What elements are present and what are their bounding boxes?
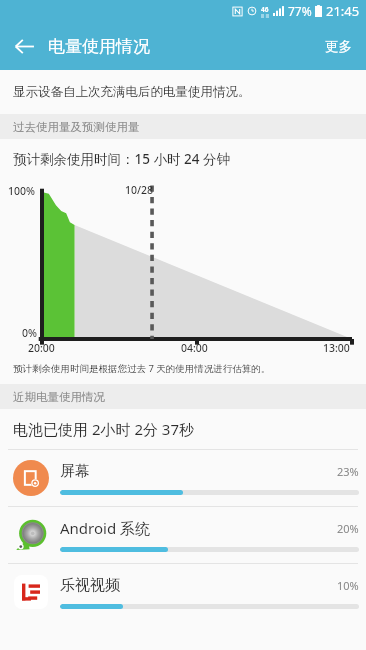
staticText: 乐视视频 (60, 576, 337, 595)
button[interactable]: 更多 (311, 26, 366, 67)
staticText: 屏幕 (60, 462, 337, 481)
staticText: 20:00 (28, 341, 55, 355)
button[interactable]: Back (0, 22, 48, 70)
staticText: 21:45 (326, 2, 360, 20)
staticText: 23% (337, 464, 359, 479)
staticText: 20% (337, 521, 359, 536)
button[interactable]: 屏幕 (0, 450, 366, 506)
staticText: 显示设备自上次充满电后的电量使用情况。 (13, 84, 251, 100)
staticText: 电量使用情况 (48, 36, 150, 57)
staticText: 0% (22, 326, 37, 340)
button[interactable]: 乐视视频 (0, 564, 366, 620)
staticText: 预计剩余使用时间是根据您过去 7 天的使用情况进行估算的。 (13, 362, 271, 375)
staticText: 77% (288, 3, 312, 19)
staticText: 46 (261, 5, 269, 14)
staticText: Android 系统 (60, 518, 337, 538)
staticText: 100% (8, 184, 35, 198)
staticText: 04:00 (181, 341, 208, 355)
staticText: 更多 (325, 38, 352, 55)
staticText: 预计剩余使用时间：15 小时 24 分钟 (13, 150, 230, 168)
staticText: 电池已使用 2小时 2分 37秒 (13, 419, 195, 439)
staticText: 过去使用量及预测使用量 (13, 120, 140, 134)
staticText: 近期电量使用情况 (13, 390, 105, 404)
staticText: 13:00 (323, 341, 350, 355)
staticText: 10/28 (125, 183, 154, 197)
button[interactable]: Android 系统 (0, 507, 366, 563)
staticText: 10% (337, 578, 359, 593)
